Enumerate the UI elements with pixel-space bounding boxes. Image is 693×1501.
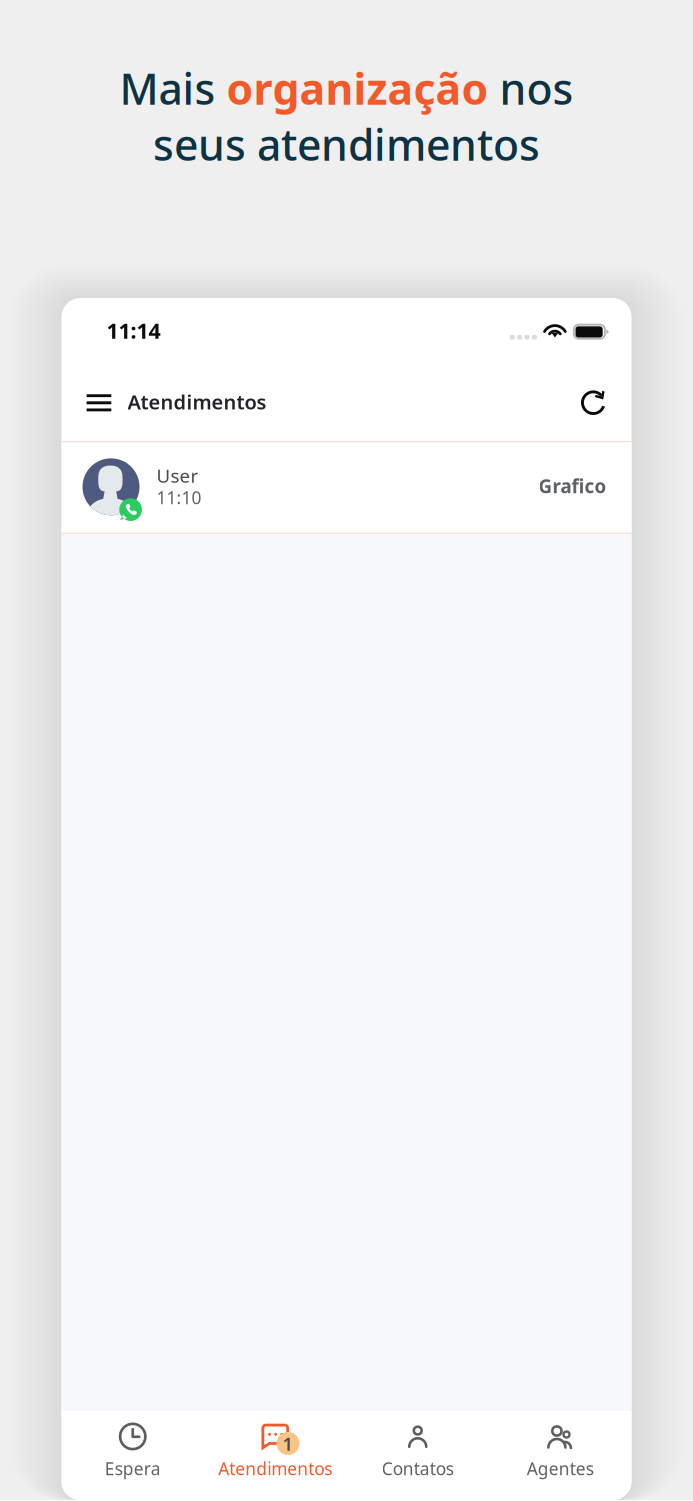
staticText: Grafico — [538, 474, 606, 498]
button[interactable]: 1 — [204, 1411, 346, 1499]
staticText: 11:10 — [156, 486, 201, 509]
button[interactable]: Contatos — [346, 1411, 489, 1499]
button[interactable]: Refresh — [581, 383, 606, 427]
staticText: Espera — [105, 1457, 161, 1480]
staticText: 1 — [283, 1431, 294, 1456]
button[interactable]: Menu — [87, 383, 111, 427]
button[interactable]: User — [61, 443, 631, 533]
staticText: Mais — [119, 60, 226, 117]
staticText: Atendimentos — [127, 388, 266, 415]
staticText: Contatos — [382, 1457, 454, 1480]
staticText: organização — [226, 60, 488, 117]
button[interactable]: Espera — [61, 1411, 204, 1499]
button[interactable]: Agentes — [489, 1411, 631, 1499]
staticText: 11:14 — [106, 316, 160, 344]
staticText: Atendimentos — [218, 1457, 332, 1480]
staticText: User — [156, 463, 198, 488]
staticText: nos — [488, 60, 573, 117]
staticText: Agentes — [527, 1457, 594, 1480]
staticText: seus atendimentos — [153, 116, 540, 173]
